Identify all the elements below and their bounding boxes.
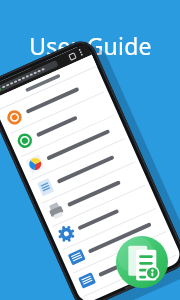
button[interactable]: Open user guide bbox=[116, 236, 168, 288]
staticText: User Guide bbox=[29, 30, 152, 61]
